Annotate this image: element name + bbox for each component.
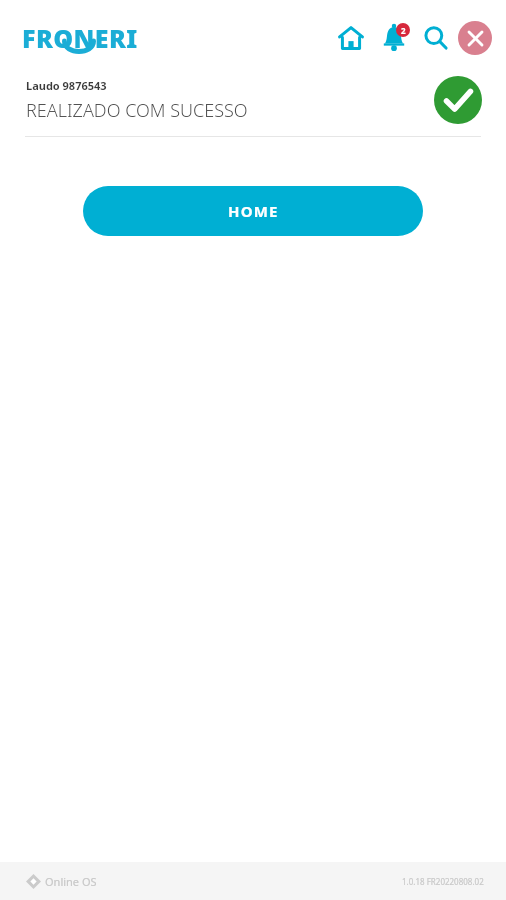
button[interactable]: Online OS: [26, 874, 97, 889]
button[interactable]: Home: [331, 18, 371, 58]
staticText: 2: [401, 25, 406, 36]
staticText: HOME: [228, 201, 279, 221]
button[interactable]: Close: [458, 21, 492, 55]
button[interactable]: HOME: [83, 186, 423, 236]
staticText: 1.0.18 FR20220808.02: [402, 876, 484, 887]
staticText: FRONERI: [22, 21, 138, 55]
button[interactable]: Notifications: [373, 17, 415, 59]
button[interactable]: Search: [416, 18, 456, 58]
staticText: Laudo 9876543: [26, 78, 107, 93]
button[interactable]: Froneri logo: [22, 21, 154, 55]
staticText: REALIZADO COM SUCESSO: [26, 98, 248, 123]
staticText: Online OS: [45, 874, 97, 889]
